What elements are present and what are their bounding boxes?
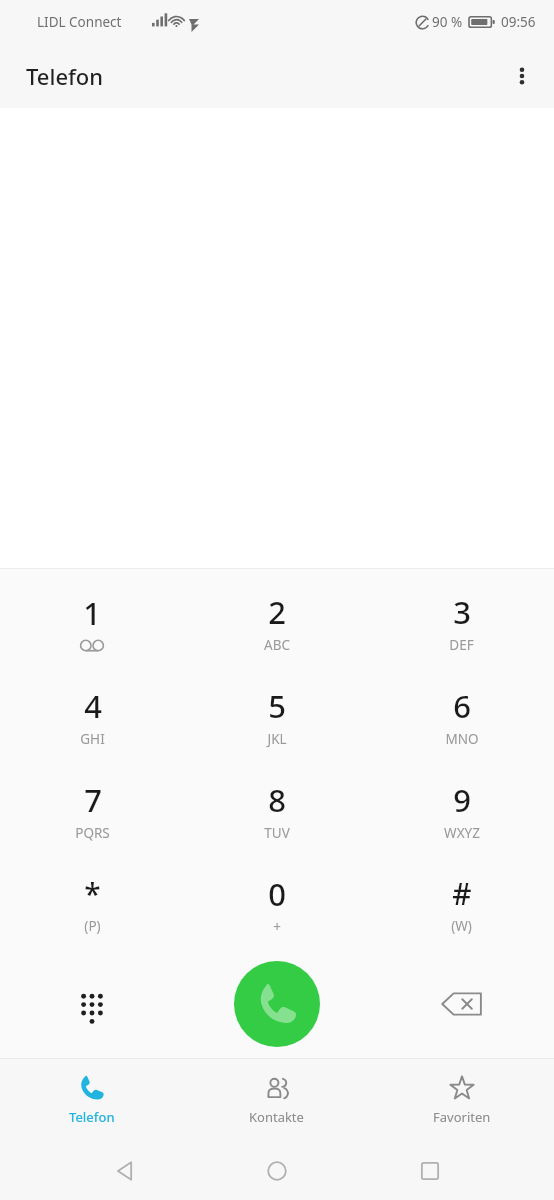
button[interactable]: Telefon <box>0 1058 184 1142</box>
staticText: (P) <box>84 917 101 935</box>
button[interactable]: 7 <box>0 763 184 857</box>
button[interactable]: Home <box>249 1143 305 1199</box>
staticText: LIDL Connect <box>37 13 122 31</box>
button[interactable]: 2 <box>184 575 369 669</box>
staticText: 5 <box>268 685 286 727</box>
staticText: MNO <box>445 730 479 748</box>
staticText: Favoriten <box>433 1108 491 1126</box>
staticText: Telefon <box>69 1108 115 1126</box>
button[interactable]: * <box>0 857 184 951</box>
button[interactable]: 0 <box>184 857 369 951</box>
staticText: + <box>273 918 281 936</box>
button[interactable]: Dialpad <box>0 951 184 1057</box>
staticText: TUV <box>264 824 290 842</box>
staticText: Telefon <box>26 61 104 91</box>
staticText: 1 <box>83 592 101 634</box>
button[interactable]: 6 <box>369 669 554 763</box>
staticText: 09:56 <box>501 13 536 31</box>
staticText: * <box>84 873 101 914</box>
staticText: JKL <box>267 730 287 748</box>
button[interactable]: 9 <box>369 763 554 857</box>
button[interactable]: Kontakte <box>184 1058 369 1142</box>
staticText: (W) <box>451 917 472 935</box>
staticText: 0 <box>268 873 286 915</box>
staticText: 8 <box>268 779 286 821</box>
button[interactable]: 3 <box>369 575 554 669</box>
staticText: WXYZ <box>444 824 480 842</box>
button[interactable]: # <box>369 857 554 951</box>
staticText: GHI <box>80 730 105 748</box>
staticText: DEF <box>449 636 474 654</box>
button[interactable]: Delete <box>369 951 554 1057</box>
staticText: 2 <box>268 591 286 633</box>
staticText: ABC <box>264 636 290 654</box>
button[interactable]: 5 <box>184 669 369 763</box>
button[interactable]: Call <box>234 961 320 1047</box>
button[interactable]: 1 <box>0 575 184 669</box>
staticText: Kontakte <box>249 1108 304 1126</box>
button[interactable]: Favoriten <box>369 1058 554 1142</box>
staticText: # <box>452 873 472 914</box>
staticText: 6 <box>453 685 471 727</box>
button[interactable]: Recent apps <box>402 1143 458 1199</box>
staticText: 9 <box>453 779 471 821</box>
staticText: 7 <box>84 779 102 821</box>
button[interactable]: Back <box>97 1143 153 1199</box>
button[interactable]: 4 <box>0 669 184 763</box>
button[interactable]: 8 <box>184 763 369 857</box>
staticText: 4 <box>84 685 102 727</box>
button[interactable]: More options <box>498 52 546 100</box>
staticText: 3 <box>453 591 471 633</box>
staticText: PQRS <box>75 824 110 842</box>
staticText: 90 % <box>432 13 463 31</box>
